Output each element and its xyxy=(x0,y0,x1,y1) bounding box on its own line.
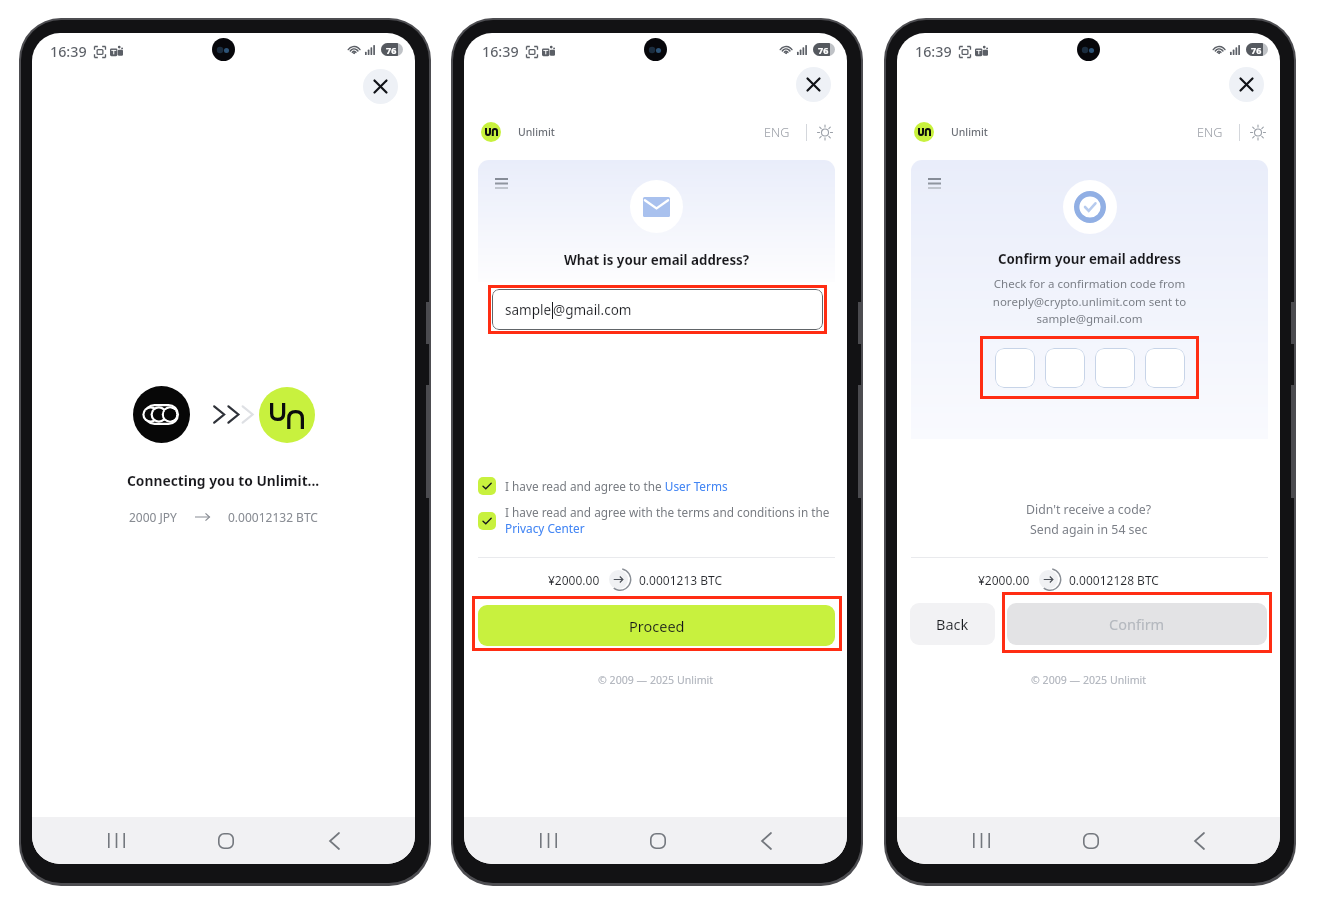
staticText: 76 xyxy=(386,44,397,56)
staticText: Unlimit xyxy=(951,125,988,139)
staticText: Unlimit xyxy=(518,125,555,139)
staticText: ENG xyxy=(764,124,790,141)
staticText: Check for a confirmation code from norep… xyxy=(911,276,1268,326)
button[interactable]: Close xyxy=(1229,67,1264,102)
staticText: 76 xyxy=(818,44,829,56)
staticText: Connecting you to Unlimit... xyxy=(127,471,320,490)
button[interactable]: Back xyxy=(306,817,362,864)
staticText: Send again in 54 sec xyxy=(1030,521,1148,538)
button[interactable]: Code digit xyxy=(1145,348,1185,388)
button[interactable]: Recents xyxy=(953,817,1009,864)
button[interactable]: Back xyxy=(910,603,995,645)
staticText: @gmail.com xyxy=(553,301,632,319)
staticText: Proceed xyxy=(629,616,685,636)
button[interactable]: Confirm xyxy=(1007,603,1267,645)
staticText: Back xyxy=(936,614,969,634)
button[interactable]: Menu xyxy=(495,178,508,189)
button[interactable]: ENG xyxy=(1194,120,1226,145)
button[interactable]: Recents xyxy=(520,817,576,864)
staticText: ENG xyxy=(1197,124,1223,141)
button[interactable]: Home xyxy=(198,817,254,864)
staticText: 0.00012132 BTC xyxy=(228,509,318,525)
staticText: ¥2000.00 xyxy=(548,572,600,588)
staticText: Confirm xyxy=(1109,614,1165,634)
staticText: sample xyxy=(505,301,552,319)
button[interactable]: Home xyxy=(630,817,686,864)
button[interactable]: ENG xyxy=(761,120,793,145)
button[interactable]: Proceed xyxy=(478,605,835,646)
button[interactable]: Code digit xyxy=(1095,348,1135,388)
staticText: 16:39 xyxy=(50,42,87,61)
button[interactable]: Code digit xyxy=(995,348,1035,388)
staticText: 16:39 xyxy=(915,42,952,61)
button[interactable]: Close xyxy=(796,67,831,102)
button[interactable]: Theme xyxy=(1250,124,1266,140)
staticText: What is your email address? xyxy=(564,251,750,269)
button[interactable]: Recents xyxy=(88,817,144,864)
button[interactable]: Close xyxy=(363,69,398,104)
button[interactable]: Theme xyxy=(817,124,833,140)
staticText: Confirm your email address xyxy=(998,250,1181,268)
button[interactable]: I have read and agree to the User Terms xyxy=(478,477,835,495)
button[interactable]: I have read and agree with the terms and… xyxy=(478,504,835,537)
staticText: I have read and agree to the User Terms xyxy=(505,478,728,494)
button[interactable]: Code digit xyxy=(1045,348,1085,388)
staticText: ¥2000.00 xyxy=(978,572,1030,588)
staticText: 0.0001213 BTC xyxy=(639,572,723,588)
button[interactable]: Back xyxy=(1171,817,1227,864)
staticText: 0.00012128 BTC xyxy=(1069,572,1159,588)
button[interactable]: Home xyxy=(1063,817,1119,864)
button[interactable]: sample xyxy=(492,289,823,330)
staticText: © 2009 — 2025 Unlimit xyxy=(598,673,714,687)
button[interactable]: Menu xyxy=(928,178,941,189)
staticText: 76 xyxy=(1251,44,1262,56)
staticText: 2000 JPY xyxy=(129,509,177,525)
staticText: 16:39 xyxy=(482,42,519,61)
button[interactable]: Back xyxy=(738,817,794,864)
staticText: © 2009 — 2025 Unlimit xyxy=(1031,673,1147,687)
staticText: Didn't receive a code? xyxy=(1026,501,1152,518)
staticText: I have read and agree with the terms and… xyxy=(505,504,835,537)
